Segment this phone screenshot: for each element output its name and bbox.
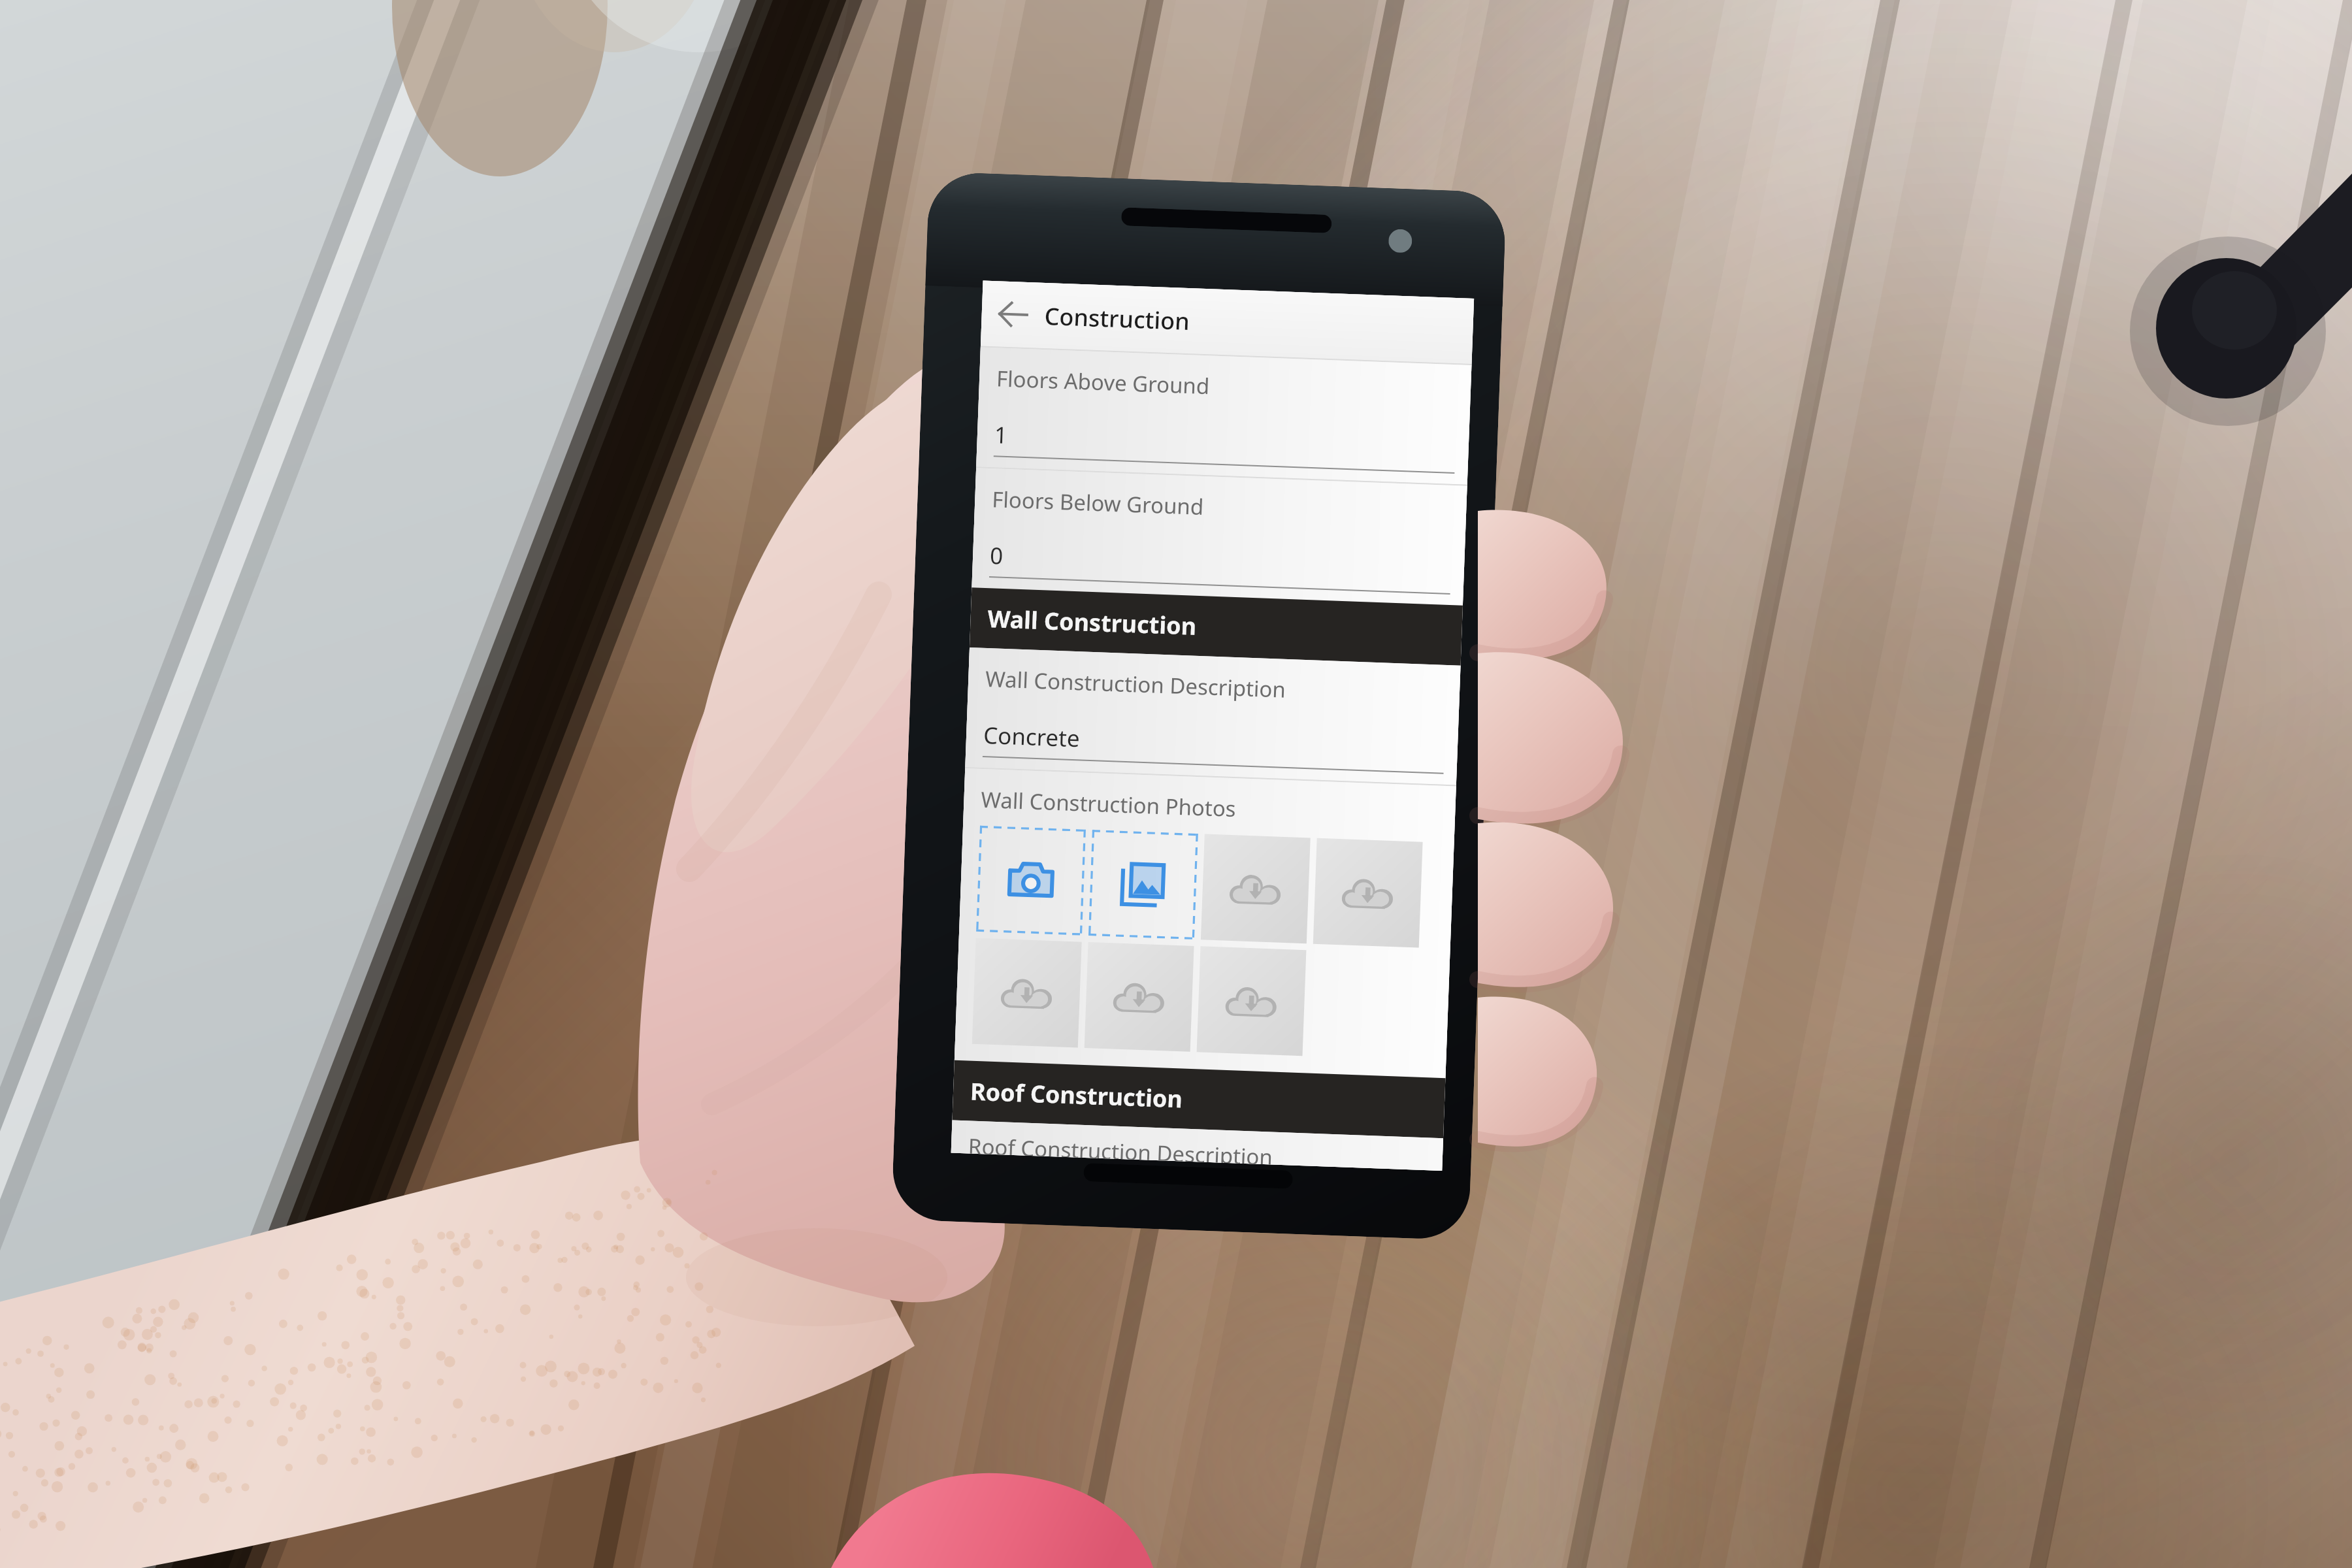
staticText: Roof Construction Description [968,1131,1274,1165]
button[interactable]: Roof Construction Description [951,1120,1443,1171]
button[interactable]: Download photo [1313,838,1423,948]
button[interactable]: Download photo [1084,942,1194,1052]
button[interactable]: Wall Construction Description [965,648,1461,785]
button[interactable]: Wall Construction [970,587,1463,665]
staticText: 1 [994,419,1009,451]
staticText: Concrete [983,719,1081,754]
button[interactable]: Add photo [976,826,1086,935]
button[interactable]: Add photo [1088,830,1198,939]
button[interactable]: Roof Construction [952,1060,1445,1138]
button[interactable]: Download photo [972,938,1082,1048]
staticText: Wall Construction [987,602,1197,642]
staticText: Floors Below Ground [991,484,1205,521]
staticText: Wall Construction Description [985,664,1286,704]
button[interactable]: Back [981,281,1046,348]
button[interactable]: Floors Below Ground [972,468,1467,605]
staticText: Wall Construction Photos [980,785,1237,823]
button[interactable]: Download photo [1197,946,1306,1056]
button[interactable]: Floors Above Ground [976,347,1472,485]
staticText: 0 [989,540,1004,572]
staticText: Floors Above Ground [996,363,1210,401]
staticText: Construction [1044,300,1191,337]
staticText: Roof Construction [970,1075,1183,1115]
button[interactable]: Download photo [1201,834,1310,944]
